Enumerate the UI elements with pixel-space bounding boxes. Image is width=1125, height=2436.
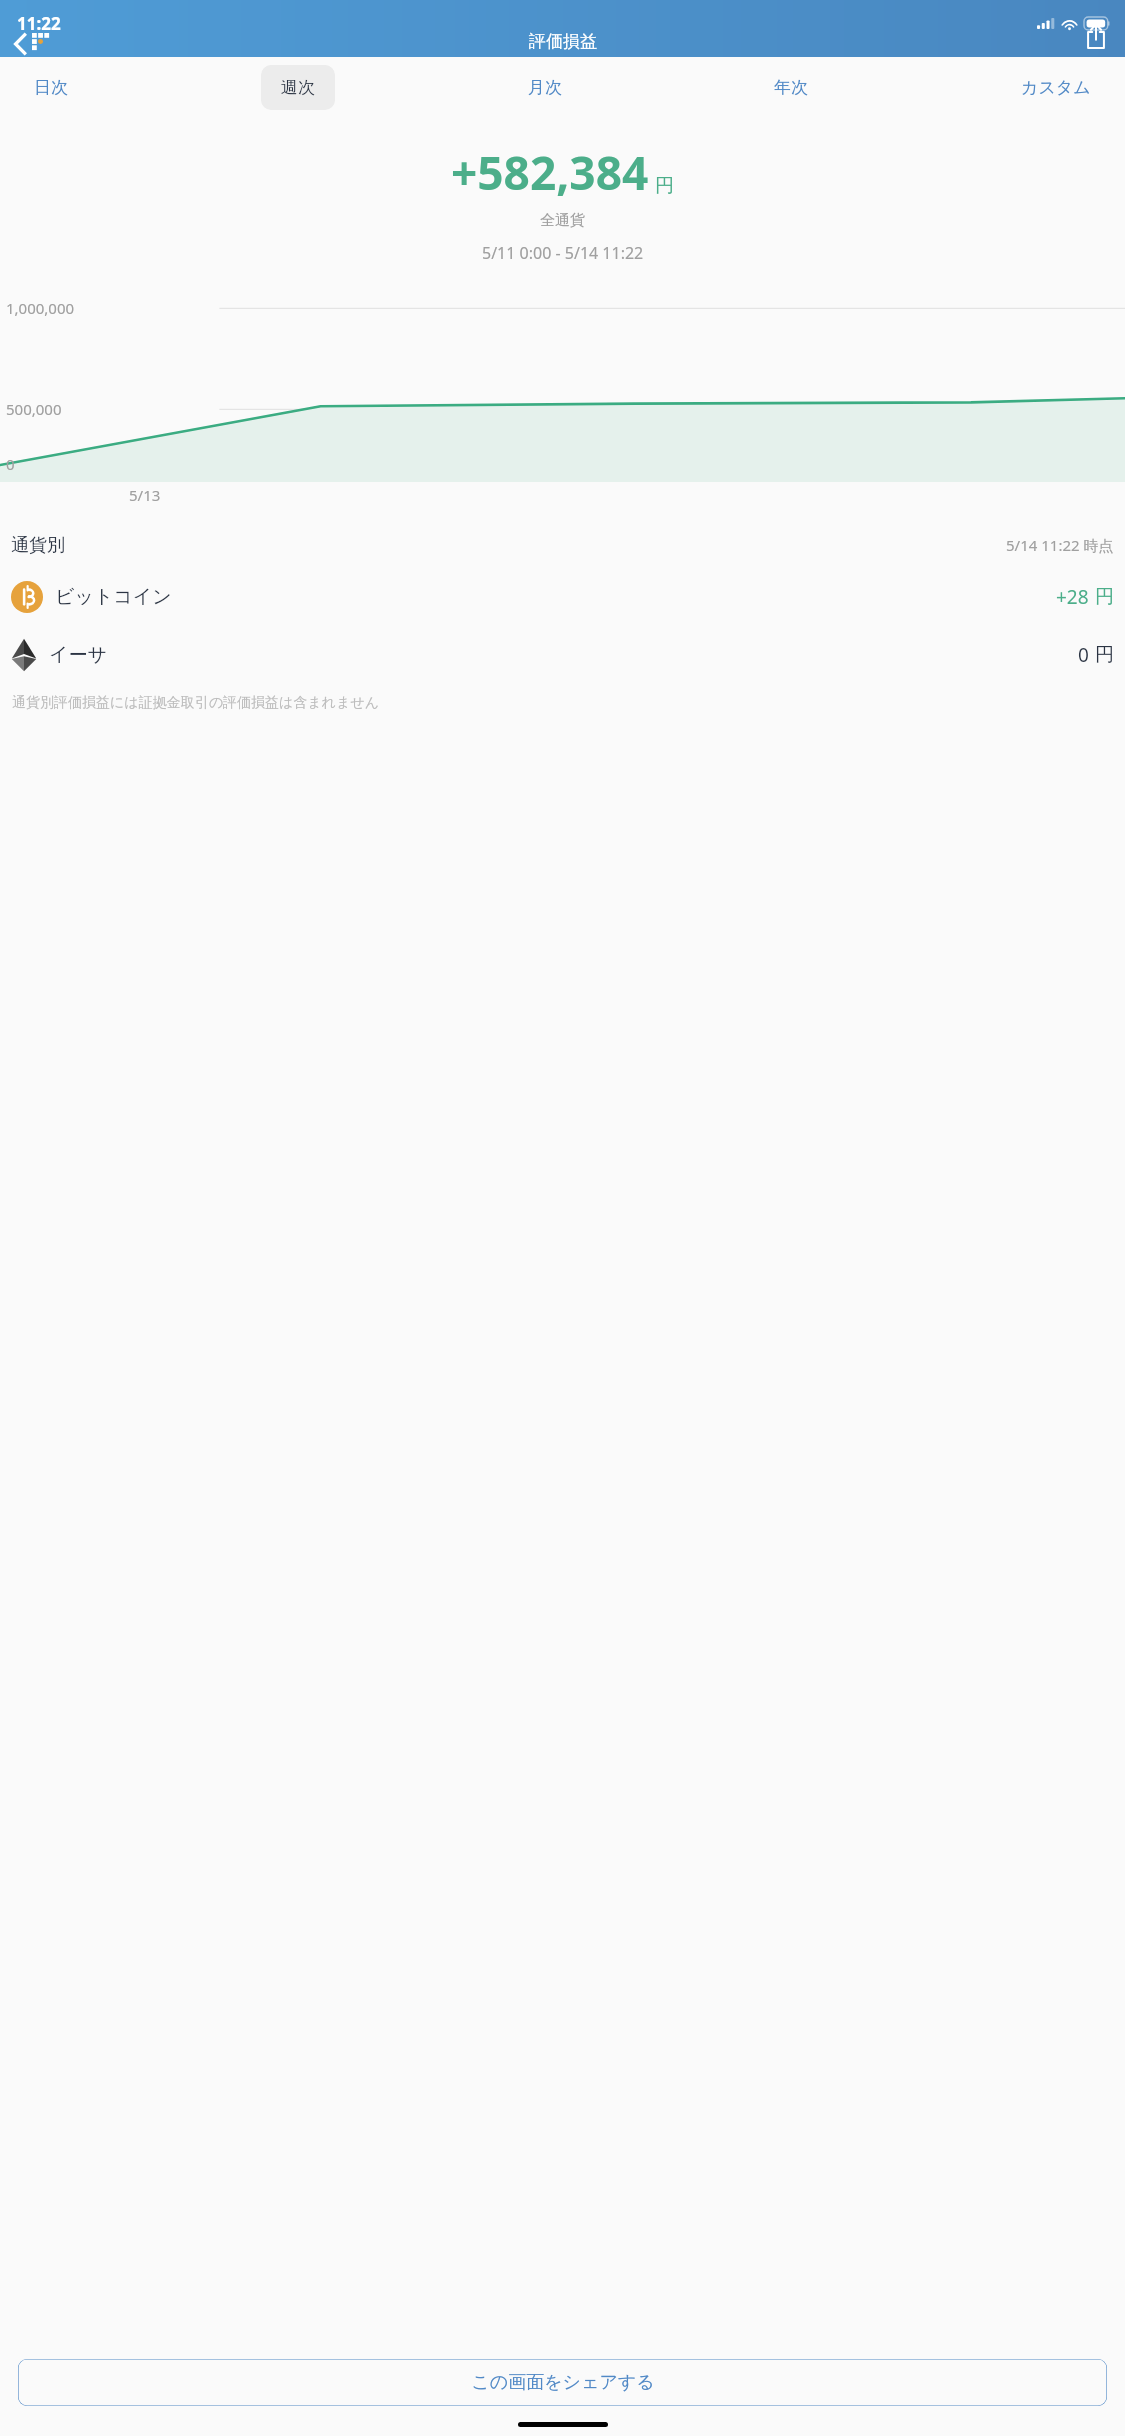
staticText: 全通貨: [540, 211, 585, 230]
staticText: 500,000: [6, 399, 62, 419]
staticText: 0: [1078, 642, 1089, 668]
staticText: ビットコイン: [55, 585, 172, 609]
staticText: 円: [1095, 585, 1114, 609]
button[interactable]: ビットコイン: [11, 568, 1114, 626]
staticText: 月次: [528, 77, 562, 98]
staticText: +28: [1056, 584, 1089, 610]
staticText: 5/13: [129, 485, 161, 505]
staticText: 0: [6, 454, 15, 474]
staticText: 通貨別評価損益には証拠金取引の評価損益は含まれません: [12, 694, 379, 712]
button[interactable]: カスタム: [1001, 65, 1111, 110]
button[interactable]: この画面をシェアする: [18, 2359, 1107, 2406]
staticText: 5/14 11:22 時点: [1006, 535, 1114, 555]
staticText: 円: [1095, 643, 1114, 667]
staticText: 年次: [774, 77, 808, 98]
button[interactable]: Share: [1079, 17, 1113, 56]
staticText: +582,384: [451, 141, 649, 204]
staticText: 11:22: [17, 12, 61, 35]
staticText: 評価損益: [529, 31, 597, 52]
staticText: この画面をシェアする: [471, 2371, 655, 2394]
button[interactable]: Back: [10, 31, 56, 57]
button[interactable]: 週次: [261, 65, 335, 110]
button[interactable]: 月次: [508, 65, 582, 110]
button[interactable]: 年次: [754, 65, 828, 110]
button[interactable]: イーサ: [11, 626, 1114, 684]
staticText: 日次: [34, 77, 68, 98]
staticText: 1,000,000: [6, 298, 75, 318]
staticText: 通貨別: [11, 534, 65, 557]
staticText: 円: [655, 174, 674, 198]
staticText: 5/11 0:00 - 5/14 11:22: [482, 242, 644, 264]
staticText: カスタム: [1021, 77, 1091, 98]
staticText: イーサ: [49, 643, 107, 667]
staticText: 週次: [281, 77, 315, 98]
button[interactable]: 日次: [14, 65, 88, 110]
